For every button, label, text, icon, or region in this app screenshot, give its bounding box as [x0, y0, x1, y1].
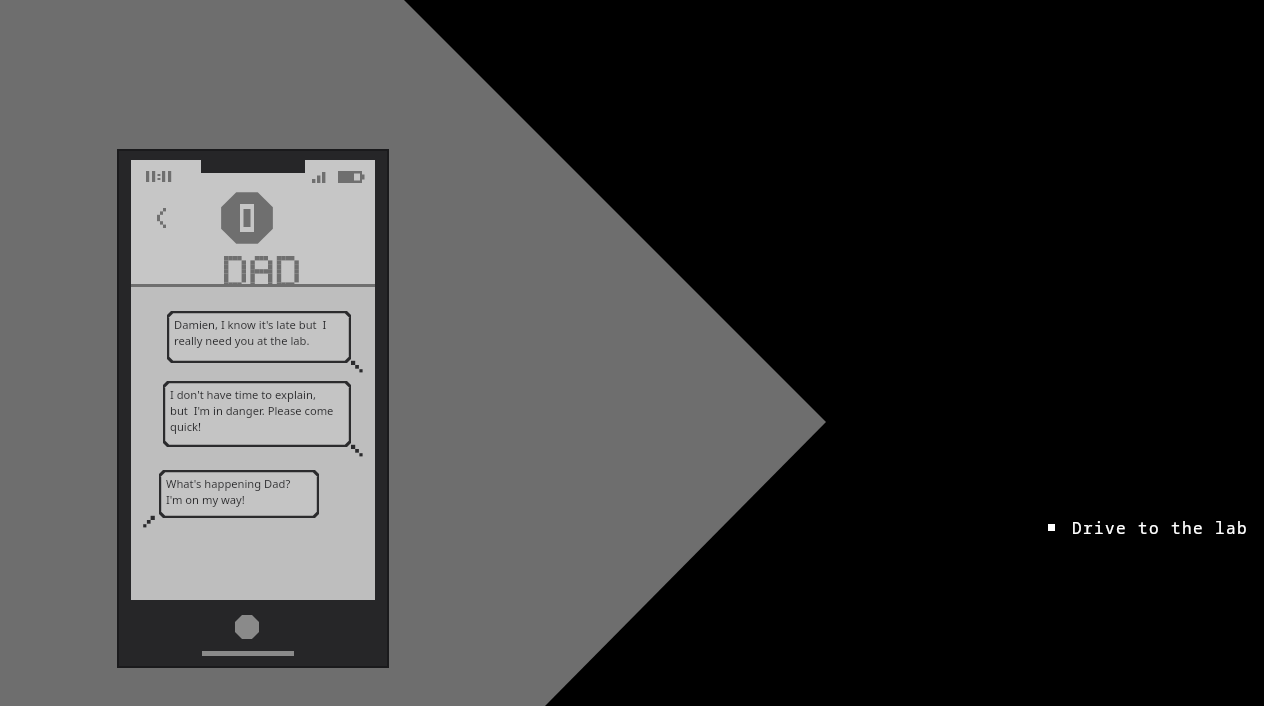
button[interactable]: Conversation with Dad	[0, 0, 1264, 706]
